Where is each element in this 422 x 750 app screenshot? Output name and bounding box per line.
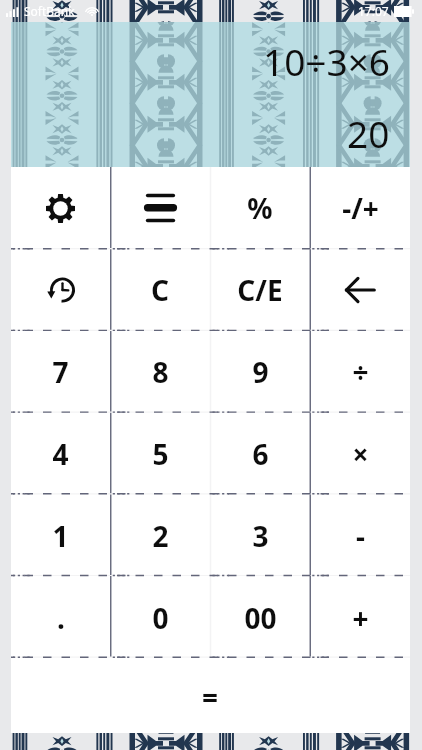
staticText: SoftBank [24, 3, 75, 19]
other: Settings [46, 194, 75, 223]
staticText: 6 [252, 435, 269, 473]
button[interactable]: 6 [210, 413, 310, 495]
staticText: ÷ [352, 353, 369, 391]
button[interactable]: History [11, 249, 110, 331]
button[interactable]: % [210, 167, 310, 249]
button[interactable]: 8 [110, 331, 210, 413]
button[interactable]: 2 [110, 495, 210, 577]
button[interactable]: C/E [210, 249, 310, 331]
staticText: 4 [52, 435, 69, 473]
button[interactable]: . [11, 577, 110, 659]
staticText: . [57, 599, 65, 637]
button[interactable]: = [11, 659, 410, 735]
button[interactable]: 0 [110, 577, 210, 659]
button[interactable]: - [310, 495, 410, 577]
staticText: 9 [252, 353, 269, 391]
staticText: 00 [244, 599, 277, 637]
staticText: 17:07 [358, 3, 389, 19]
other: Menu [146, 193, 175, 223]
button[interactable]: 7 [11, 331, 110, 413]
button[interactable]: + [310, 577, 410, 659]
staticText: 3 [252, 517, 269, 555]
staticText: - [356, 517, 365, 555]
staticText: 8 [152, 353, 169, 391]
button[interactable]: 00 [210, 577, 310, 659]
button[interactable]: 3 [210, 495, 310, 577]
other: History [46, 275, 76, 305]
button[interactable]: 1 [11, 495, 110, 577]
staticText: 5 [152, 435, 169, 473]
button[interactable]: Settings [11, 167, 110, 249]
button[interactable]: Backspace [310, 249, 410, 331]
staticText: 2 [152, 517, 169, 555]
button[interactable]: Menu [110, 167, 210, 249]
staticText: = [202, 678, 219, 716]
staticText: + [352, 599, 369, 637]
staticText: 10÷3×6 [263, 36, 390, 86]
staticText: C [151, 271, 169, 309]
button[interactable]: -/+ [310, 167, 410, 249]
button[interactable]: C [110, 249, 210, 331]
staticText: % [247, 189, 273, 227]
staticText: 1 [52, 517, 69, 555]
button[interactable]: 4 [11, 413, 110, 495]
staticText: -/+ [342, 189, 379, 227]
staticText: 0 [152, 599, 169, 637]
staticText: 20 [347, 108, 390, 158]
button[interactable]: × [310, 413, 410, 495]
staticText: C/E [237, 271, 283, 309]
button[interactable]: ÷ [310, 331, 410, 413]
other: Backspace [343, 273, 377, 307]
button[interactable]: 5 [110, 413, 210, 495]
staticText: × [352, 435, 369, 473]
staticText: 7 [52, 353, 69, 391]
button[interactable]: 9 [210, 331, 310, 413]
